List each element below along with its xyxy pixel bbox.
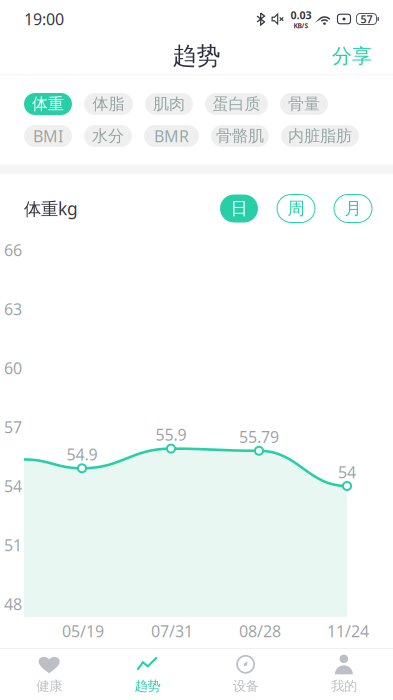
- staticText: 骨量: [288, 94, 320, 114]
- staticText: 周: [287, 198, 304, 219]
- staticText: 55.79: [239, 426, 279, 447]
- staticText: 54.9: [66, 444, 97, 465]
- staticText: 趋势: [172, 41, 220, 71]
- button[interactable]: 健康: [0, 649, 98, 700]
- staticText: 体脂: [92, 94, 124, 114]
- button[interactable]: 体重: [24, 93, 72, 115]
- staticText: 水分: [92, 126, 124, 146]
- staticText: 54: [4, 475, 22, 497]
- staticText: 骨骼肌: [216, 126, 264, 146]
- staticText: 57: [4, 416, 22, 438]
- staticText: 51: [4, 534, 22, 556]
- button[interactable]: 水分: [84, 125, 132, 147]
- staticText: KB/S: [293, 21, 308, 30]
- button[interactable]: 日: [220, 194, 258, 222]
- staticText: 内脏脂肪: [288, 126, 352, 146]
- staticText: BMR: [154, 125, 189, 147]
- button[interactable]: 骨量: [280, 93, 328, 115]
- button[interactable]: 分享: [322, 38, 382, 74]
- staticText: 0.03: [290, 8, 311, 22]
- button[interactable]: 体脂: [84, 93, 133, 115]
- staticText: 54: [338, 461, 356, 483]
- staticText: 体重: [32, 94, 64, 114]
- staticText: 19:00: [24, 8, 64, 30]
- button[interactable]: 月: [334, 194, 372, 222]
- button[interactable]: BMR: [144, 125, 199, 147]
- staticText: 66: [4, 239, 22, 261]
- button[interactable]: 趋势: [98, 649, 196, 700]
- staticText: 体重kg: [24, 197, 78, 220]
- button[interactable]: 骨骼肌: [211, 125, 269, 147]
- staticText: 蛋白质: [212, 94, 260, 114]
- button[interactable]: 内脏脂肪: [281, 125, 359, 147]
- button[interactable]: 我的: [295, 649, 393, 700]
- staticText: 55.9: [155, 424, 186, 445]
- staticText: 60: [4, 357, 22, 379]
- staticText: 11/24: [327, 620, 369, 642]
- staticText: 健康: [36, 678, 62, 694]
- staticText: 05/19: [62, 620, 104, 642]
- staticText: BMI: [33, 125, 63, 147]
- staticText: 08/28: [239, 620, 281, 642]
- staticText: 日: [230, 198, 247, 219]
- staticText: 肌肉: [153, 94, 185, 114]
- button[interactable]: 设备: [196, 649, 295, 700]
- staticText: 月: [344, 198, 361, 219]
- button[interactable]: 周: [277, 194, 315, 222]
- staticText: 分享: [332, 44, 372, 68]
- staticText: 我的: [331, 678, 357, 694]
- button[interactable]: 肌肉: [145, 93, 193, 115]
- staticText: 57: [360, 12, 372, 26]
- button[interactable]: 蛋白质: [205, 93, 268, 115]
- staticText: 设备: [233, 678, 259, 694]
- staticText: 48: [4, 593, 22, 615]
- staticText: 63: [4, 298, 22, 320]
- staticText: 趋势: [134, 678, 160, 694]
- staticText: 07/31: [151, 620, 193, 642]
- button[interactable]: BMI: [24, 125, 72, 147]
